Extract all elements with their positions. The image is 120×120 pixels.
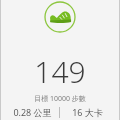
button[interactable]: 目標 10000 步數 <box>0 94 120 104</box>
button[interactable]: 149 <box>0 51 120 92</box>
button[interactable]: 16 大卡 <box>60 106 114 118</box>
staticText: 149 <box>34 51 86 92</box>
staticText: 0.28 公里 <box>13 106 52 118</box>
staticText: 16 大卡 <box>72 106 103 118</box>
button[interactable]: 0.28 公里 <box>6 106 59 118</box>
button[interactable]: Steps activity <box>44 1 76 33</box>
staticText: 目標 10000 步數 <box>34 94 86 104</box>
